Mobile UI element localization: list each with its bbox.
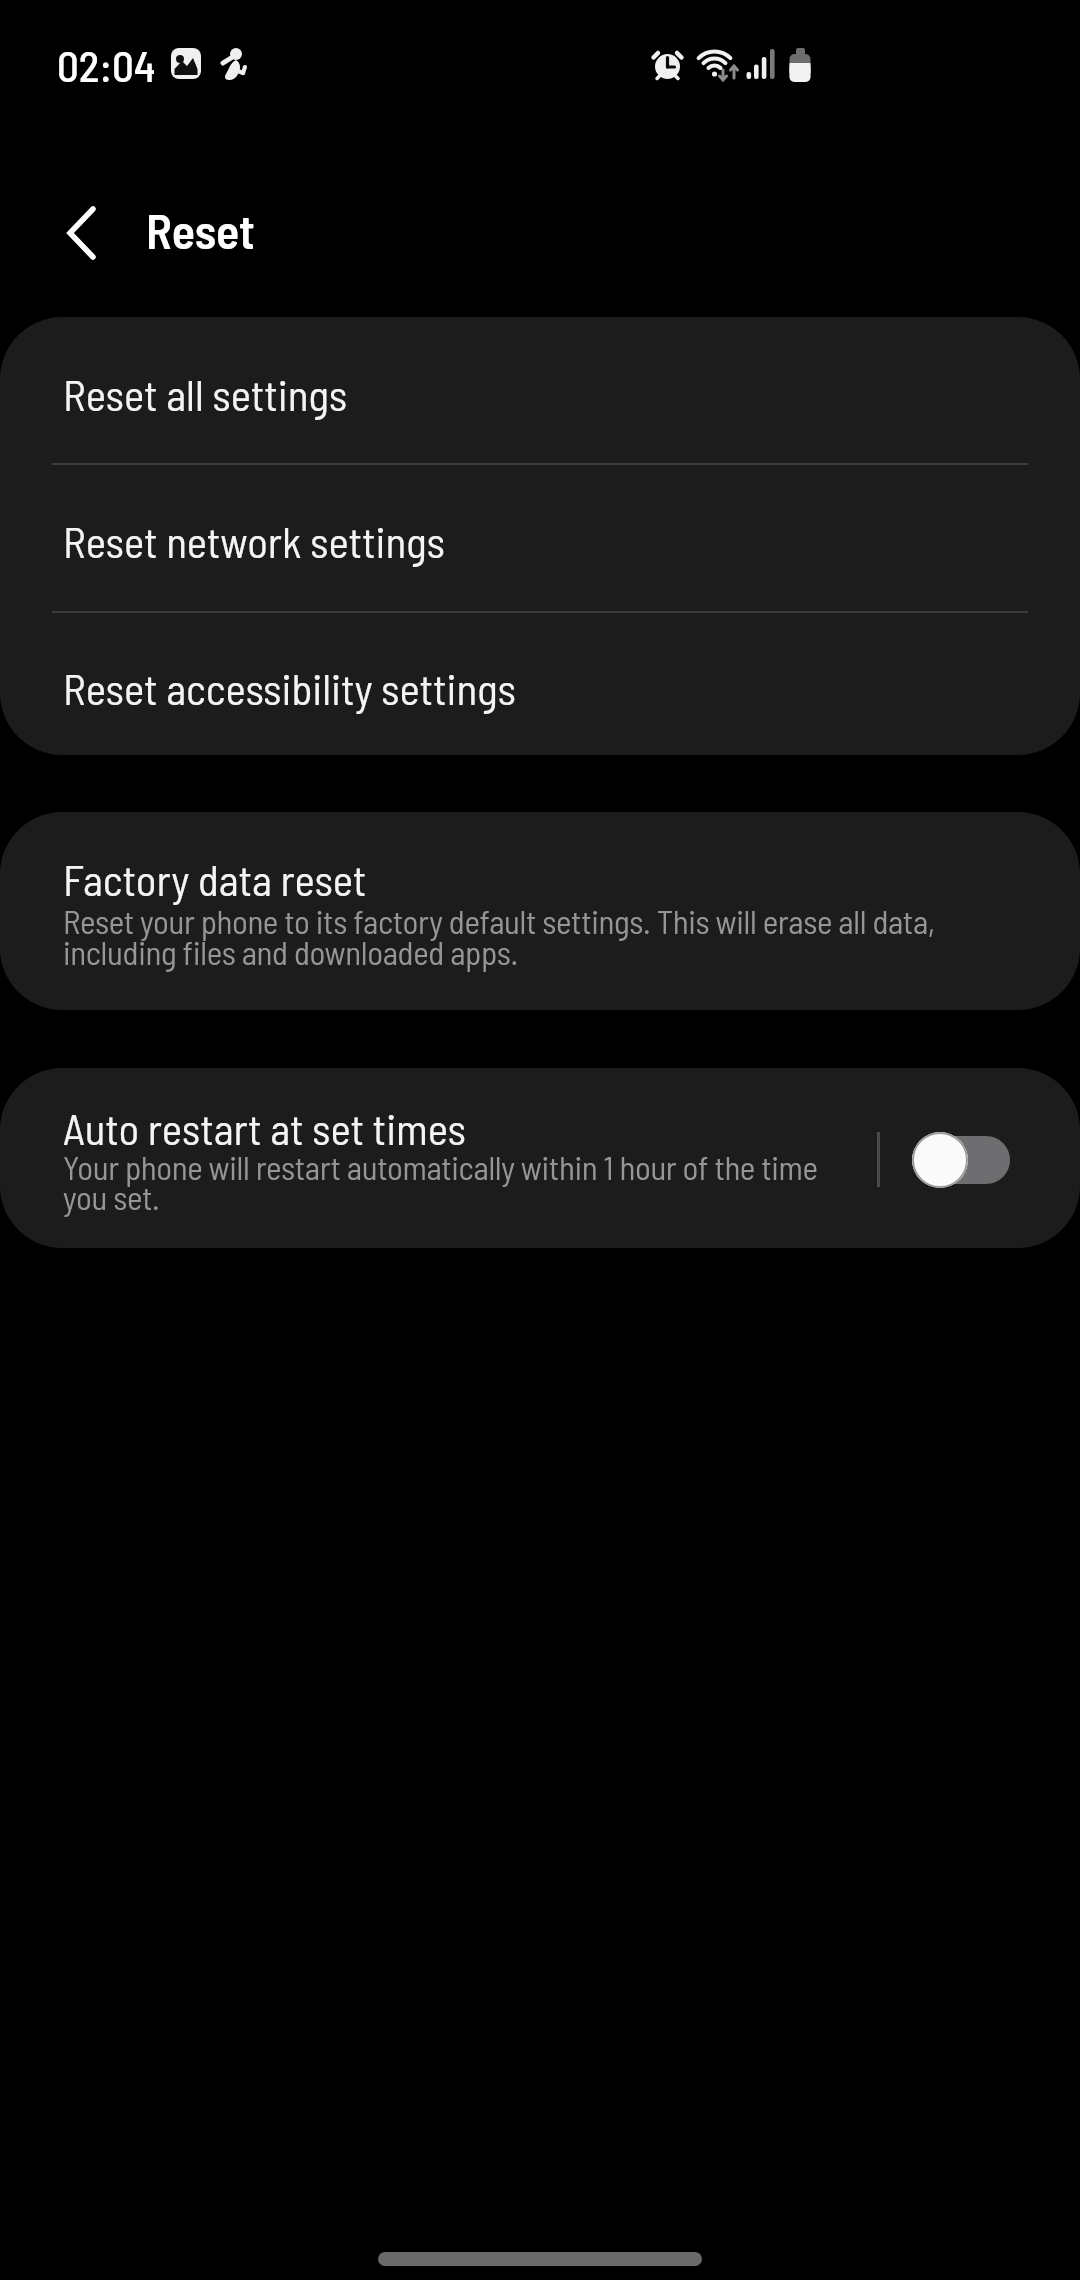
staticText: Reset all settings — [63, 368, 348, 420]
staticText: you set. — [63, 1177, 160, 1217]
button[interactable] — [52, 200, 112, 266]
button[interactable]: Auto restart at set times — [0, 1068, 1080, 1248]
staticText: Reset accessibility settings — [63, 662, 516, 714]
staticText: including files and downloaded apps. — [63, 932, 518, 972]
staticText: Reset network settings — [63, 515, 445, 567]
staticText: Reset your phone to its factory default … — [63, 901, 935, 941]
button[interactable] — [908, 1128, 1014, 1192]
button[interactable]: Factory data reset — [0, 812, 1080, 1010]
staticText: Your phone will restart automatically wi… — [63, 1147, 818, 1187]
staticText: Factory data reset — [63, 853, 367, 905]
staticText: Auto restart at set times — [63, 1102, 466, 1154]
staticText: 02:04 — [57, 39, 156, 91]
staticText: Reset — [146, 201, 255, 259]
button[interactable]: Reset network settings — [0, 465, 1080, 611]
button[interactable]: Reset accessibility settings — [0, 613, 1080, 755]
button[interactable]: Reset all settings — [0, 317, 1080, 463]
